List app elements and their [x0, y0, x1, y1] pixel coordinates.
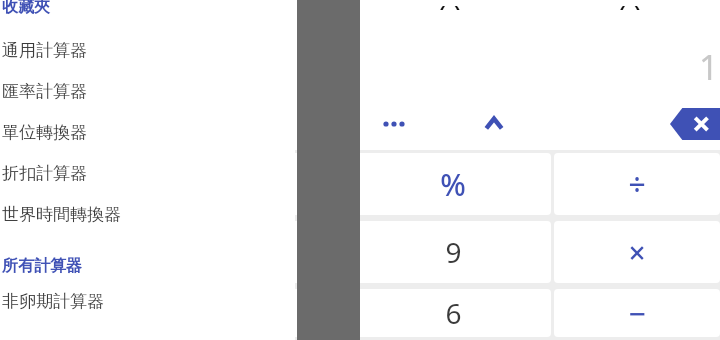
staticText: ( ) [437, 0, 463, 10]
staticText: × [628, 232, 646, 273]
staticText: ( ) [617, 0, 643, 10]
staticText: 匯率計算器 [2, 81, 87, 102]
staticText: 9 [445, 233, 462, 271]
button[interactable]: 世界時間轉換器 [0, 194, 295, 235]
staticText: 7 [68, 233, 85, 271]
button[interactable]: 6 [355, 289, 551, 337]
button[interactable]: 7 [0, 221, 153, 283]
button[interactable]: 非卵期計算器 [0, 281, 295, 322]
button[interactable]: Expand [474, 104, 514, 144]
staticText: 收藏夾 [2, 0, 50, 17]
button[interactable]: Backspace [670, 108, 720, 140]
button[interactable]: 8 [156, 221, 352, 283]
button[interactable]: 匯率計算器 [0, 71, 295, 112]
staticText: 非卵期計算器 [2, 291, 104, 312]
button[interactable]: ÷ [554, 153, 720, 215]
button[interactable]: 通用計算器 [0, 30, 295, 71]
button[interactable]: % [355, 153, 551, 215]
staticText: 17 [699, 44, 720, 90]
button[interactable]: More [376, 106, 412, 142]
staticText: 世界時間轉換器 [2, 204, 121, 225]
button[interactable]: − [554, 289, 720, 337]
button[interactable]: 折扣計算器 [0, 153, 295, 194]
staticText: 所有計算器 [2, 256, 82, 276]
staticText: % [440, 164, 466, 205]
staticText: − [628, 293, 646, 334]
button[interactable]: 4 [0, 289, 153, 337]
staticText: 6 [445, 294, 462, 332]
button[interactable]: ( ) [156, 153, 352, 215]
staticText: 折扣計算器 [2, 163, 87, 184]
staticText: 通用計算器 [2, 40, 87, 61]
staticText: C [67, 164, 87, 205]
staticText: 4 [68, 294, 85, 332]
button[interactable]: 單位轉換器 [0, 112, 295, 153]
button[interactable]: 9 [355, 221, 551, 283]
staticText: 單位轉換器 [2, 122, 87, 143]
staticText: ÷ [628, 164, 646, 205]
button[interactable]: × [554, 221, 720, 283]
button[interactable]: 5 [156, 289, 352, 337]
button[interactable]: C [0, 153, 153, 215]
